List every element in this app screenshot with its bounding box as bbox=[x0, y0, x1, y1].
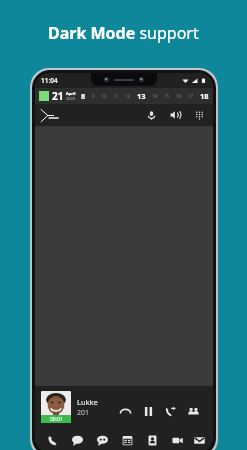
staticText: 201 bbox=[77, 408, 90, 418]
staticText: 11:04 bbox=[41, 76, 58, 85]
button[interactable]: Video bbox=[167, 430, 187, 450]
button[interactable]: Speaker bbox=[166, 106, 184, 124]
button[interactable]: Hang up bbox=[117, 403, 133, 419]
button[interactable]: Chats bbox=[67, 430, 87, 450]
button[interactable]: 00:01 bbox=[35, 386, 213, 428]
staticText: 17 bbox=[188, 93, 194, 99]
staticText: 13 bbox=[137, 91, 146, 101]
staticText: Dark Mode support bbox=[48, 22, 199, 44]
button[interactable]: Conference bbox=[185, 403, 201, 419]
staticText: 2020 bbox=[66, 96, 76, 101]
button[interactable]: Dialpad bbox=[190, 106, 208, 124]
staticText: 14 bbox=[152, 93, 158, 99]
staticText: 00:01 bbox=[50, 416, 63, 423]
button[interactable]: Messages bbox=[92, 430, 112, 450]
staticText: 16 bbox=[176, 93, 182, 99]
button[interactable]: Hold bbox=[140, 403, 156, 419]
button[interactable]: Transfer call bbox=[162, 403, 178, 419]
button[interactable]: Mail bbox=[192, 430, 206, 450]
staticText: April bbox=[66, 91, 76, 96]
button[interactable]: Calls bbox=[42, 430, 62, 450]
staticText: 9 bbox=[92, 93, 95, 99]
staticText: 15 bbox=[164, 93, 170, 99]
button[interactable]: Contacts bbox=[142, 430, 162, 450]
staticText: 21 bbox=[52, 89, 64, 103]
staticText: 10 bbox=[101, 93, 107, 99]
staticText: 18 bbox=[200, 91, 209, 101]
staticText: Lukke bbox=[77, 397, 98, 407]
staticText: 12 bbox=[125, 93, 131, 99]
button[interactable]: Calendar bbox=[117, 430, 137, 450]
staticText: 8 bbox=[81, 91, 86, 101]
staticText: 11 bbox=[113, 93, 119, 99]
button[interactable]: Microphone bbox=[142, 106, 160, 124]
